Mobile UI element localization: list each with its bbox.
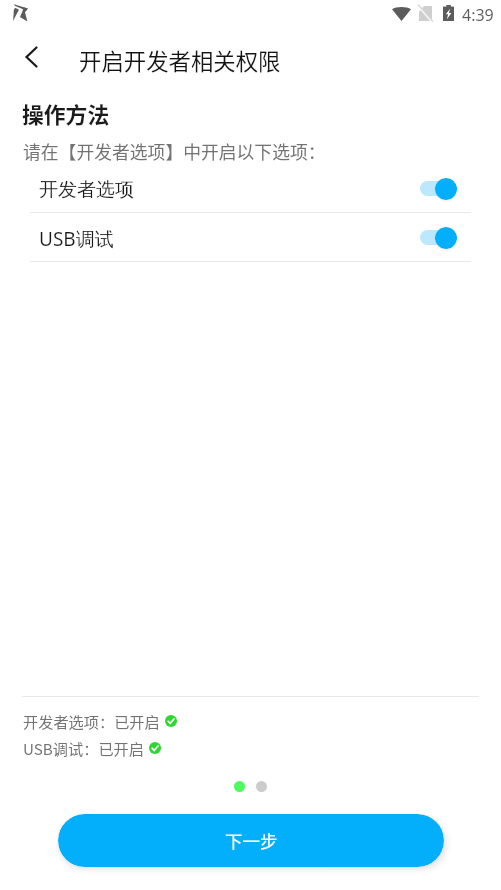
staticText: USB调试 xyxy=(39,226,114,252)
button[interactable]: 开发者选项 xyxy=(0,164,501,212)
button[interactable]: 下一步 xyxy=(58,814,444,867)
staticText: USB调试：已开启 xyxy=(23,737,144,759)
staticText: 开发者选项：已开启 xyxy=(23,710,160,732)
staticText: 开发者选项 xyxy=(39,178,134,202)
staticText: 请在【开发者选项】中开启以下选项： xyxy=(23,138,326,164)
button[interactable]: USB调试 xyxy=(0,213,501,261)
staticText: 操作方法 xyxy=(22,98,110,130)
staticText: 4:39 xyxy=(462,4,494,26)
staticText: 开启开发者相关权限 xyxy=(79,44,281,76)
button[interactable]: Back xyxy=(9,35,53,79)
staticText: 下一步 xyxy=(225,828,278,853)
